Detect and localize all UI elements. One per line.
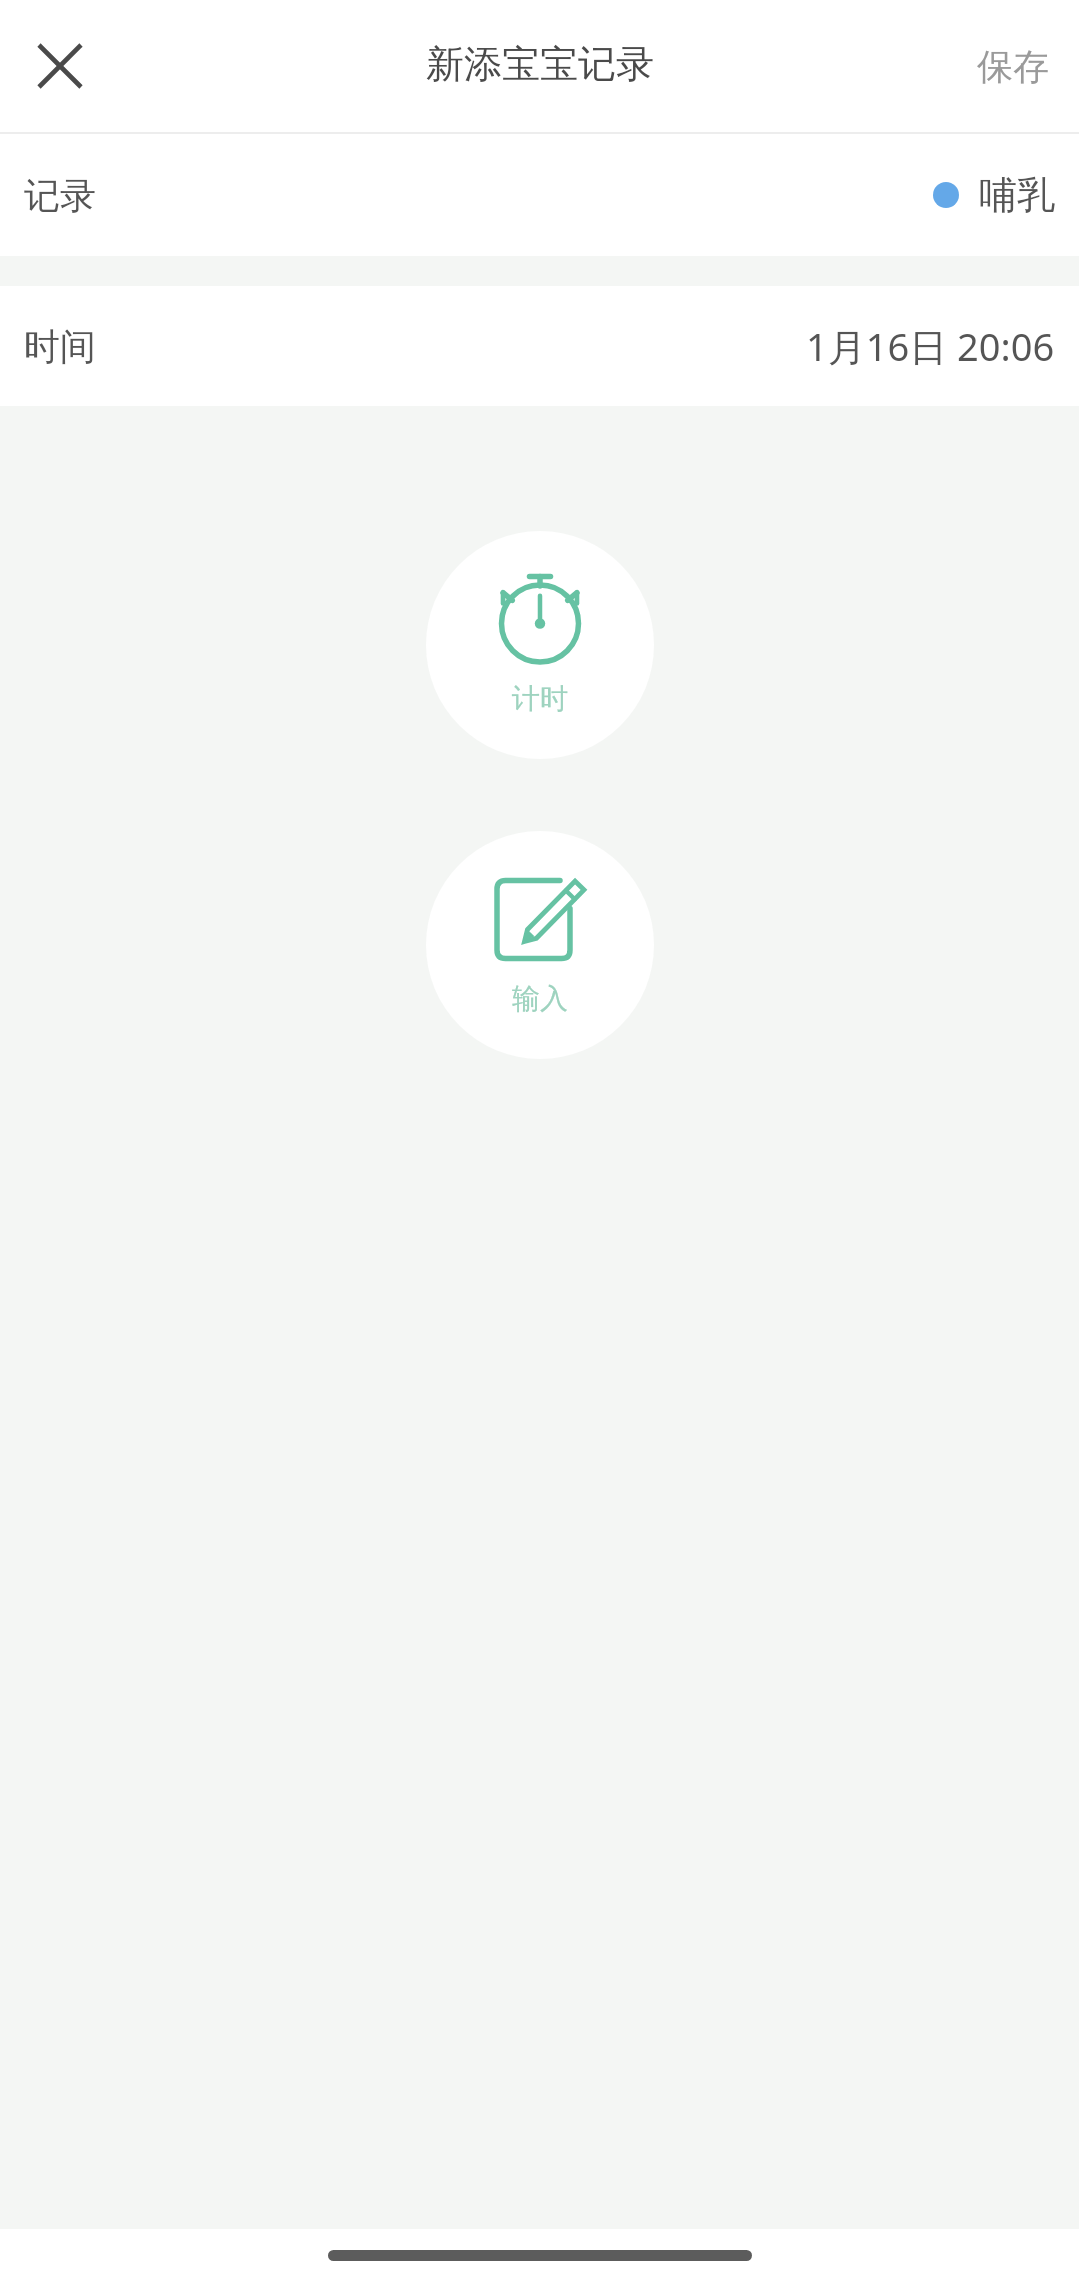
staticText: 1月16日 20:06 — [806, 320, 1055, 372]
staticText: 记录 — [24, 173, 96, 218]
staticText: 输入 — [512, 981, 568, 1016]
button[interactable]: 记录 — [0, 134, 1079, 256]
button[interactable]: 保存 — [947, 0, 1079, 132]
button[interactable]: 计时 — [426, 531, 654, 759]
staticText: 哺乳 — [979, 171, 1055, 219]
staticText: 新添宝宝记录 — [426, 40, 654, 88]
button[interactable]: 输入 — [426, 831, 654, 1059]
staticText: 计时 — [512, 681, 568, 716]
staticText: 保存 — [977, 44, 1049, 89]
staticText: 时间 — [24, 324, 96, 369]
button[interactable]: 时间 — [0, 286, 1079, 406]
button[interactable]: 关闭 — [16, 22, 104, 110]
